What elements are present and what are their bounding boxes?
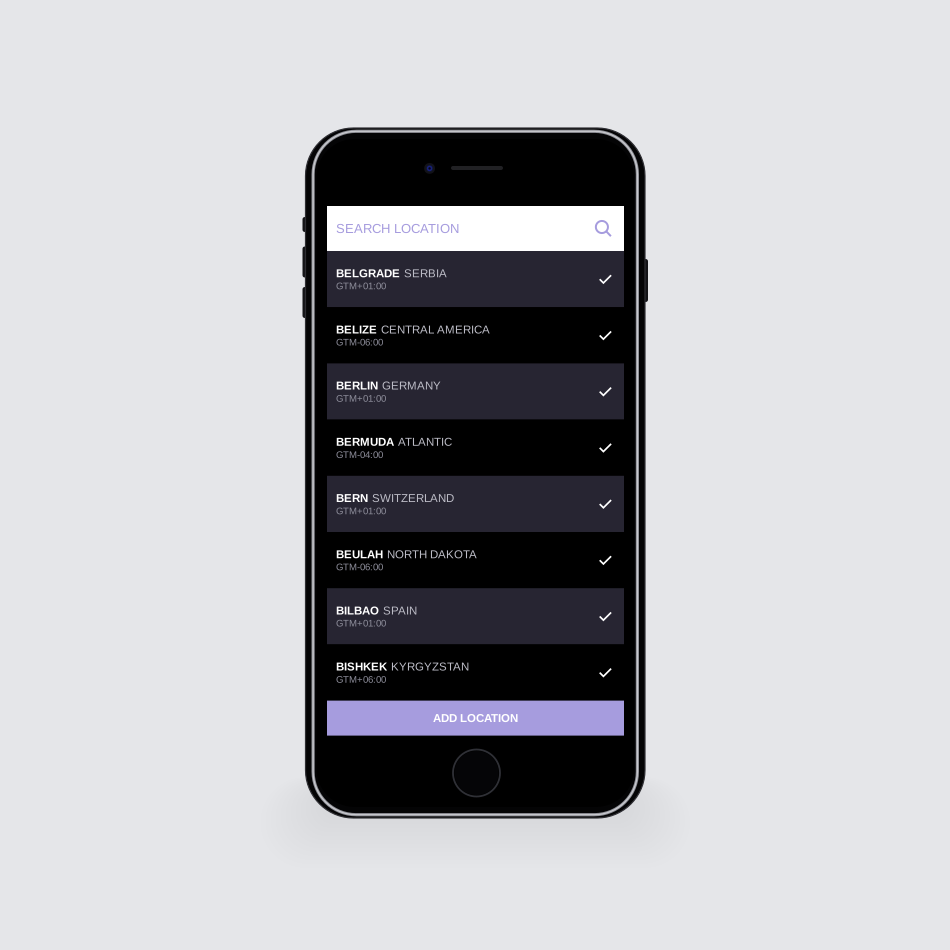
staticText: BERN [336, 492, 368, 504]
button[interactable]: BELGRADE [327, 251, 624, 307]
staticText: SEARCH LOCATION [336, 221, 459, 236]
staticText: GTM-04:00 [336, 449, 383, 460]
staticText: CENTRAL AMERICA [381, 323, 490, 336]
staticText: NORTH DAKOTA [387, 548, 477, 561]
button[interactable]: BILBAO [327, 588, 624, 644]
button[interactable]: BEULAH [327, 532, 624, 588]
staticText: ATLANTIC [398, 435, 452, 448]
staticText: ADD LOCATION [433, 712, 518, 724]
staticText: BERLIN [336, 379, 378, 392]
staticText: GTM-06:00 [336, 562, 383, 572]
button[interactable]: Search location [327, 206, 624, 251]
button[interactable]: BERMUDA [327, 420, 624, 476]
button[interactable]: ADD LOCATION [327, 701, 624, 736]
staticText: KYRGYZSTAN [391, 660, 469, 673]
staticText: SWITZERLAND [372, 492, 454, 504]
staticText: BEULAH [336, 548, 383, 561]
staticText: BISHKEK [336, 660, 387, 673]
staticText: SPAIN [383, 604, 417, 617]
button[interactable]: BISHKEK [327, 644, 624, 701]
staticText: GTM+01:00 [336, 618, 386, 628]
button[interactable]: BERLIN [327, 363, 624, 420]
staticText: SERBIA [404, 267, 447, 280]
staticText: BELIZE [336, 323, 377, 336]
button[interactable]: BERN [327, 476, 624, 532]
button[interactable]: BELIZE [327, 307, 624, 363]
staticText: GTM+01:00 [336, 505, 386, 516]
staticText: GTM+01:00 [336, 281, 386, 291]
staticText: BELGRADE [336, 267, 400, 280]
staticText: GTM+01:00 [336, 393, 386, 404]
staticText: GTM+06:00 [336, 674, 386, 685]
staticText: GTM-06:00 [336, 337, 383, 347]
staticText: BILBAO [336, 604, 379, 617]
staticText: GERMANY [382, 379, 441, 392]
staticText: BERMUDA [336, 435, 394, 448]
